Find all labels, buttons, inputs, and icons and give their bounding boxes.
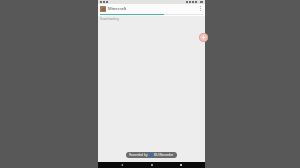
button[interactable]: Recent apps <box>176 162 186 168</box>
staticText: Recorded by <box>129 153 148 157</box>
button[interactable]: Home <box>147 162 157 168</box>
staticText: Minecraft <box>108 6 197 11</box>
button[interactable]: More options <box>197 6 203 12</box>
button[interactable]: App icon <box>100 6 106 12</box>
button[interactable]: Add <box>199 33 208 42</box>
button[interactable]: Back <box>117 162 127 168</box>
staticText: DU Recorder <box>154 153 174 157</box>
staticText: Downloading <box>100 17 119 21</box>
